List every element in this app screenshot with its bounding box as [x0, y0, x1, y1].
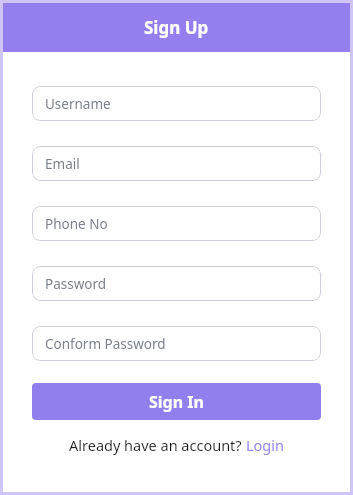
staticText: Email [45, 155, 80, 173]
button[interactable]: Login [246, 435, 284, 455]
button[interactable]: Username [32, 86, 321, 121]
staticText: Phone No [45, 215, 108, 233]
staticText: Conform Password [45, 335, 166, 353]
staticText: Already have an account? [69, 435, 246, 455]
staticText: Password [45, 275, 107, 293]
staticText: Sign In [149, 391, 204, 413]
button[interactable]: Password [32, 266, 321, 301]
button[interactable]: Sign In [32, 383, 321, 420]
staticText: Username [45, 95, 111, 113]
staticText: Sign Up [144, 16, 209, 39]
button[interactable]: Conform Password [32, 326, 321, 361]
button[interactable]: Email [32, 146, 321, 181]
staticText: Login [246, 435, 284, 455]
button[interactable]: Phone No [32, 206, 321, 241]
